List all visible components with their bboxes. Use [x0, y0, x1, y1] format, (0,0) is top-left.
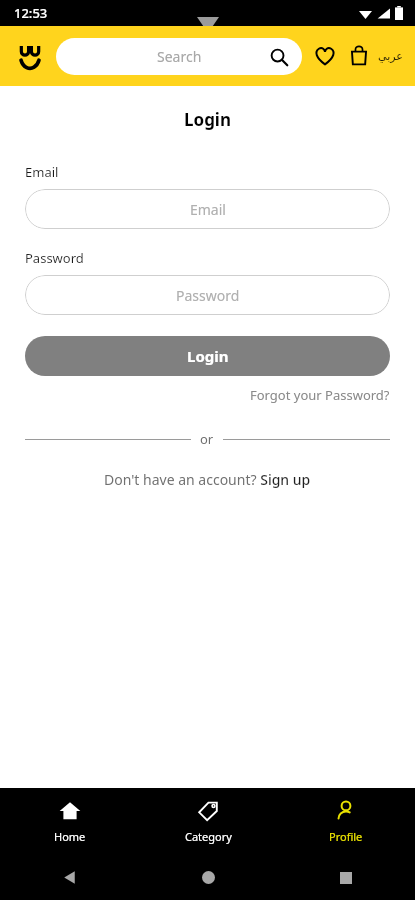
staticText: Login: [187, 346, 229, 366]
staticText: Don't have an account? Sign up: [104, 470, 311, 489]
staticText: Search: [157, 47, 202, 66]
staticText: 12:53: [14, 4, 48, 22]
button[interactable]: Email: [25, 189, 390, 229]
button[interactable]: عربي: [376, 50, 405, 63]
staticText: Profile: [329, 829, 363, 844]
button[interactable]: Forgot your Password?: [250, 386, 390, 404]
button[interactable]: Search: [56, 38, 302, 75]
staticText: Password: [176, 286, 240, 305]
button[interactable]: Profile: [277, 793, 415, 850]
staticText: Category: [185, 829, 232, 844]
button[interactable]: Cart: [344, 41, 374, 71]
button[interactable]: Wishlist: [310, 41, 340, 71]
staticText: Home: [54, 829, 86, 844]
staticText: عربي: [378, 50, 403, 63]
staticText: Login: [0, 108, 415, 131]
staticText: or: [200, 430, 214, 448]
button[interactable]: Don't have an account? Sign up: [0, 470, 415, 489]
button[interactable]: Login: [25, 336, 390, 376]
staticText: Forgot your Password?: [250, 386, 390, 404]
button[interactable]: Password: [25, 275, 390, 315]
staticText: Email: [190, 200, 226, 219]
staticText: Email: [25, 163, 59, 181]
button[interactable]: Home: [0, 793, 139, 850]
button[interactable]: Home logo: [10, 36, 50, 76]
staticText: Password: [25, 249, 84, 267]
button[interactable]: Category: [139, 793, 277, 850]
